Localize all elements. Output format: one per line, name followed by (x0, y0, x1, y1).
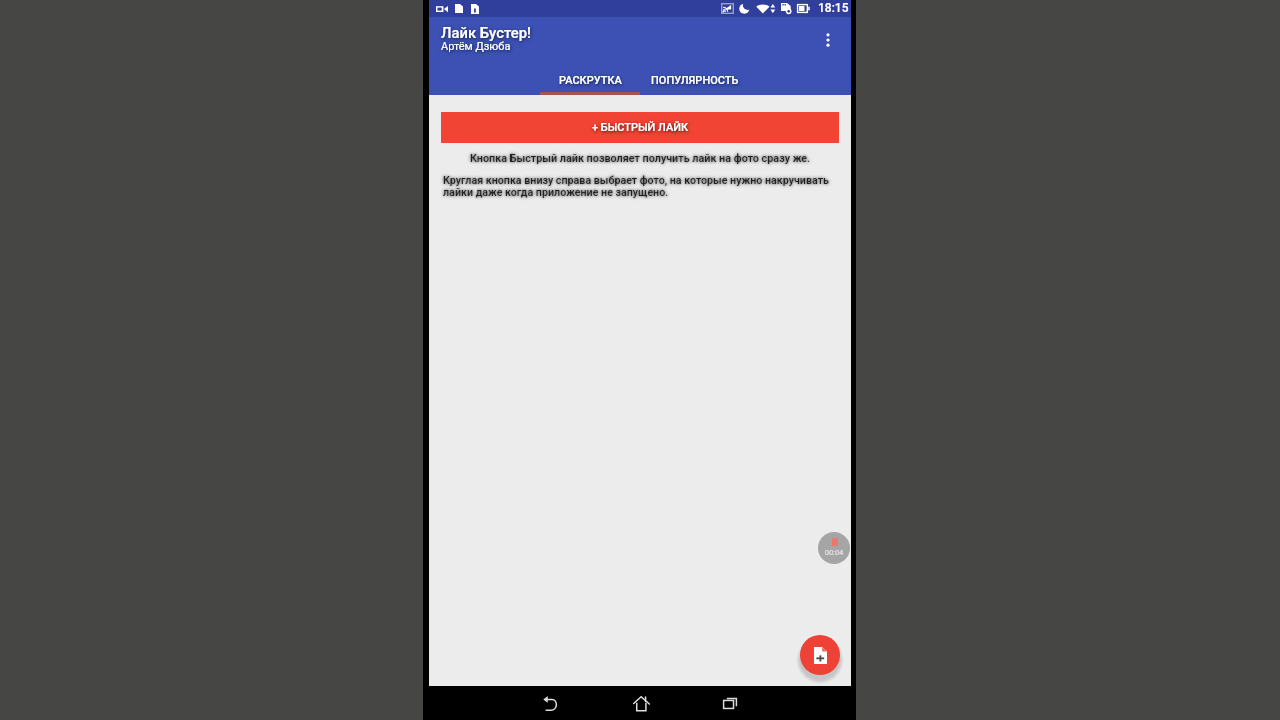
button[interactable]: + БЫСТРЫЙ ЛАЙК (441, 112, 839, 143)
button[interactable]: Add photo (800, 635, 840, 675)
button[interactable]: More options (810, 22, 846, 58)
button[interactable]: Home (621, 693, 661, 713)
staticText: Кнопка Быстрый лайк позволяет получить л… (441, 152, 839, 165)
staticText: Лайк Бустер! (441, 24, 531, 41)
staticText: + БЫСТРЫЙ ЛАЙК (592, 121, 689, 134)
staticText: ПОПУЛЯРНОСТЬ (651, 74, 739, 87)
button[interactable]: ПОПУЛЯРНОСТЬ (640, 67, 750, 95)
staticText: 18:15 (818, 1, 849, 15)
button[interactable]: Stop recording (818, 532, 850, 564)
button[interactable]: Recent apps (710, 693, 750, 713)
button[interactable]: РАСКРУТКА (540, 67, 640, 95)
staticText: РАСКРУТКА (559, 74, 622, 87)
button[interactable]: Back (530, 693, 570, 713)
staticText: 00:04 (818, 548, 850, 557)
staticText: Артём Дзюба (441, 40, 511, 53)
staticText: Круглая кнопка внизу справа выбрает фото… (443, 174, 839, 198)
